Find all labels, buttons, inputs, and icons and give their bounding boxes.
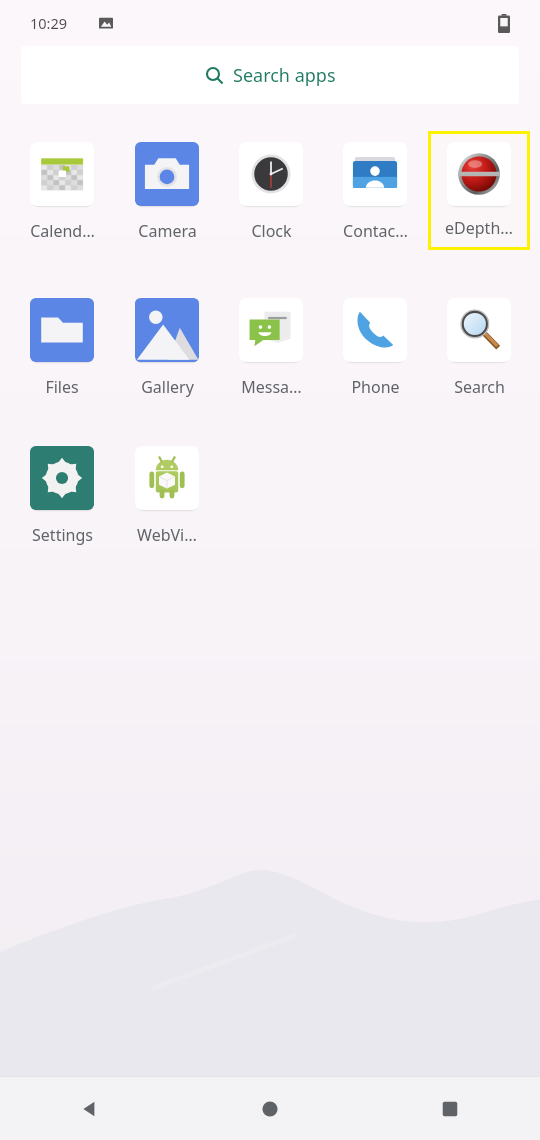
button[interactable]: phone (324, 287, 426, 398)
other: calendar (30, 142, 94, 206)
other: camera (135, 142, 199, 206)
button[interactable]: messages (220, 287, 322, 398)
button[interactable]: Recents (360, 1077, 540, 1140)
button[interactable]: Back (0, 1077, 180, 1140)
other: contacts (343, 142, 407, 206)
other: gallery (135, 298, 199, 362)
button[interactable]: files (11, 287, 113, 398)
button[interactable]: Search apps (21, 46, 519, 104)
button[interactable]: calendar (11, 131, 113, 242)
other: clock (239, 142, 303, 206)
staticText: 10:29 (30, 13, 68, 33)
other: settings (30, 446, 94, 510)
staticText: Contac… (343, 220, 408, 242)
staticText: Settings (32, 524, 93, 546)
staticText: Camera (138, 220, 197, 242)
staticText: Clock (251, 220, 292, 242)
staticText: Messa… (241, 376, 302, 398)
staticText: Phone (351, 376, 400, 398)
staticText: Gallery (141, 376, 194, 398)
button[interactable]: edepth (431, 134, 527, 247)
button[interactable]: search (428, 287, 530, 398)
button[interactable]: camera (116, 131, 218, 242)
staticText: Calend… (30, 220, 95, 242)
button[interactable]: contacts (324, 131, 426, 242)
button[interactable]: Home (180, 1077, 360, 1140)
staticText: eDepth… (445, 217, 513, 239)
other: phone (343, 298, 407, 362)
other: search (447, 298, 511, 362)
staticText: Search (454, 376, 505, 398)
button[interactable]: gallery (116, 287, 218, 398)
button[interactable]: webview (116, 435, 218, 546)
other: files (30, 298, 94, 362)
staticText: Search apps (233, 63, 336, 88)
other: webview (135, 446, 199, 510)
staticText: WebVi… (137, 524, 197, 546)
button[interactable]: clock (220, 131, 322, 242)
button[interactable]: settings (11, 435, 113, 546)
other: edepth (447, 142, 511, 206)
other: messages (239, 298, 303, 362)
staticText: Files (45, 376, 79, 398)
